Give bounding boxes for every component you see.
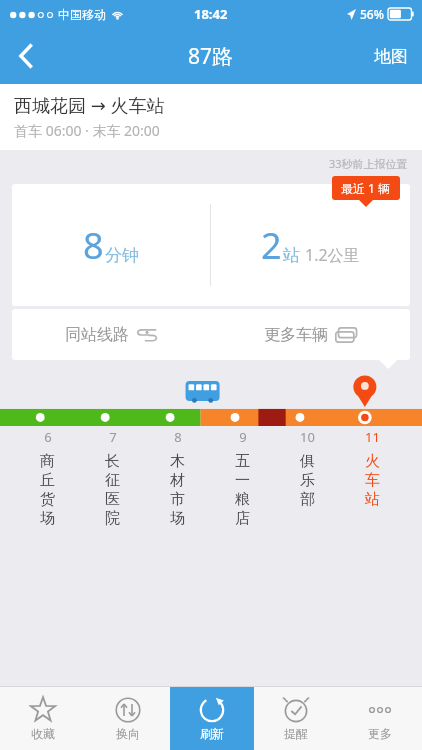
button[interactable]: 8 bbox=[145, 428, 210, 528]
staticText: 换向 bbox=[116, 726, 140, 741]
button[interactable]: 最近 1 辆 bbox=[332, 176, 400, 200]
staticText: 刷新 bbox=[200, 726, 224, 741]
staticText: 11 bbox=[365, 428, 380, 446]
button[interactable]: 10 bbox=[275, 428, 340, 509]
staticText: 8 bbox=[174, 428, 182, 446]
staticText: 货 bbox=[40, 490, 55, 509]
staticText: 收藏 bbox=[31, 726, 55, 741]
staticText: 丘 bbox=[40, 471, 55, 490]
staticText: 中国移动 bbox=[58, 7, 106, 22]
staticText: 最近 1 辆 bbox=[341, 180, 391, 196]
staticText: 9 bbox=[239, 428, 247, 446]
button[interactable]: Back bbox=[0, 28, 52, 84]
staticText: 站 bbox=[365, 490, 380, 509]
staticText: 场 bbox=[170, 509, 185, 528]
staticText: 首车 06:00 · 末车 20:00 bbox=[14, 121, 160, 140]
staticText: 市 bbox=[170, 490, 185, 509]
staticText: 33秒前上报位置 bbox=[329, 156, 408, 171]
staticText: 7 bbox=[109, 428, 117, 446]
button[interactable]: 更多 bbox=[338, 687, 422, 750]
staticText: 长 bbox=[105, 452, 120, 471]
staticText: 商 bbox=[40, 452, 55, 471]
staticText: 2 bbox=[261, 221, 282, 270]
staticText: 场 bbox=[40, 509, 55, 528]
staticText: 医 bbox=[105, 490, 120, 509]
staticText: 车 bbox=[365, 471, 380, 490]
button[interactable]: 8 bbox=[12, 184, 210, 306]
staticText: 征 bbox=[105, 471, 120, 490]
staticText: 院 bbox=[105, 509, 120, 528]
staticText: 1.2公里 bbox=[305, 244, 360, 266]
button[interactable]: 更多车辆 bbox=[211, 309, 410, 360]
button[interactable]: 收藏 bbox=[0, 687, 85, 750]
staticText: 部 bbox=[300, 490, 315, 509]
staticText: 木 bbox=[170, 452, 185, 471]
staticText: 更多 bbox=[368, 726, 392, 741]
staticText: 更多车辆 bbox=[264, 325, 328, 345]
staticText: 粮 bbox=[235, 490, 250, 509]
button[interactable]: 同站线路 bbox=[12, 309, 211, 360]
button[interactable]: 11 bbox=[340, 428, 405, 509]
staticText: 分钟 bbox=[105, 245, 139, 266]
staticText: 五 bbox=[235, 452, 250, 471]
staticText: 提醒 bbox=[284, 726, 308, 741]
staticText: 一 bbox=[235, 471, 250, 490]
staticText: 站 bbox=[283, 245, 300, 266]
button[interactable]: 7 bbox=[80, 428, 145, 528]
staticText: 6 bbox=[44, 428, 52, 446]
button[interactable]: 2 bbox=[211, 184, 410, 306]
staticText: 西城花园 → 火车站 bbox=[14, 93, 165, 118]
button[interactable]: 西城花园 → 火车站 bbox=[0, 84, 422, 150]
button[interactable]: 地图 bbox=[360, 28, 422, 84]
staticText: 56% bbox=[360, 6, 384, 22]
staticText: 乐 bbox=[300, 471, 315, 490]
staticText: 87路 bbox=[188, 42, 234, 71]
staticText: 10 bbox=[300, 428, 315, 446]
button[interactable]: 6 bbox=[15, 428, 80, 528]
button[interactable]: 刷新 bbox=[170, 687, 254, 750]
staticText: 店 bbox=[235, 509, 250, 528]
staticText: 8 bbox=[83, 221, 104, 270]
button[interactable]: 提醒 bbox=[254, 687, 338, 750]
staticText: 火 bbox=[365, 452, 380, 471]
staticText: 材 bbox=[170, 471, 185, 490]
staticText: 地图 bbox=[374, 46, 408, 67]
staticText: 俱 bbox=[300, 452, 315, 471]
button[interactable]: 9 bbox=[210, 428, 275, 528]
button[interactable]: 换向 bbox=[85, 687, 170, 750]
staticText: 18:42 bbox=[194, 5, 228, 23]
staticText: 同站线路 bbox=[65, 325, 129, 345]
